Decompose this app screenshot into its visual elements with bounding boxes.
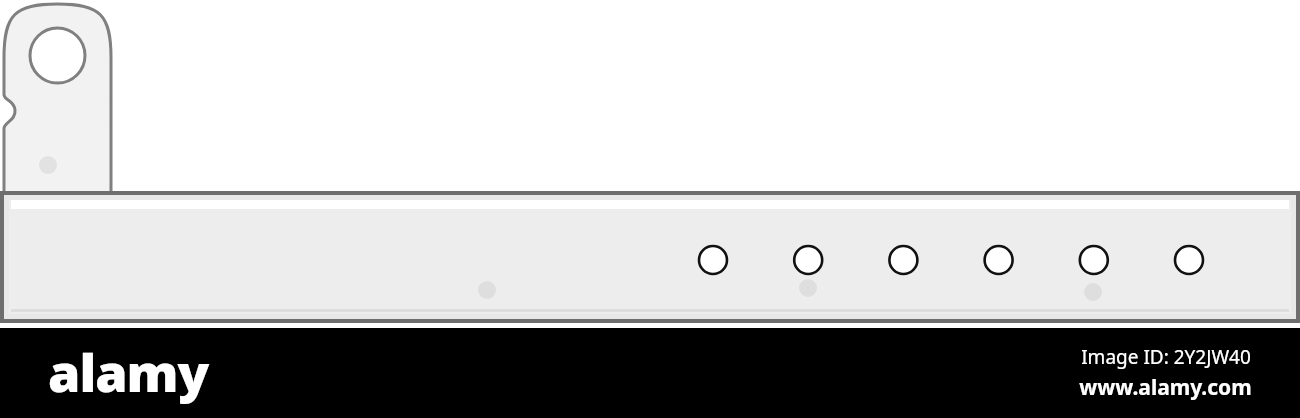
staticText: alamy (48, 336, 209, 407)
staticText: www.alamy.com (1079, 373, 1252, 402)
staticText: Image ID: 2Y2JW40 (1081, 344, 1251, 370)
button[interactable]: Plastic strap tag illustration (0, 0, 1300, 328)
